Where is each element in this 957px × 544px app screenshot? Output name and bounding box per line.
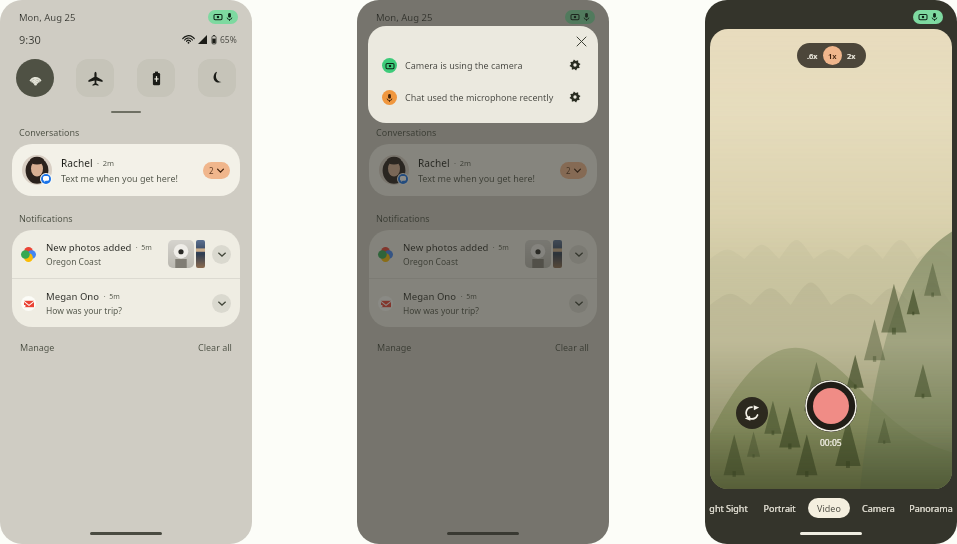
- button[interactable]: ght Sight: [707, 498, 750, 518]
- staticText: Mon, Aug 25: [19, 11, 76, 24]
- staticText: · 2m: [450, 158, 472, 168]
- button[interactable]: .6x: [804, 48, 821, 64]
- staticText: Notifications: [19, 212, 73, 224]
- button[interactable]: 1x: [823, 46, 842, 65]
- button[interactable]: [565, 10, 595, 24]
- staticText: Conversations: [376, 126, 437, 138]
- button[interactable]: Battery saver: [494, 59, 532, 97]
- button[interactable]: Megan Ono: [369, 279, 597, 327]
- staticText: Notifications: [376, 212, 430, 224]
- button[interactable]: Panorama: [907, 498, 955, 518]
- staticText: New photos added: [46, 241, 132, 254]
- button[interactable]: Do not disturb: [555, 59, 593, 97]
- staticText: Text me when you get here!: [61, 172, 178, 184]
- staticText: How was your trip?: [46, 305, 123, 317]
- staticText: Oregon Coast: [46, 256, 102, 268]
- button[interactable]: Rachel: [12, 144, 240, 196]
- button[interactable]: [208, 10, 238, 24]
- button[interactable]: Camera: [860, 498, 897, 518]
- button[interactable]: Manage: [18, 339, 57, 355]
- button[interactable]: Chat used the microphone recently: [368, 83, 598, 111]
- button[interactable]: Portrait: [761, 498, 798, 518]
- button[interactable]: Do not disturb: [198, 59, 236, 97]
- button[interactable]: New photos added: [369, 230, 597, 278]
- button[interactable]: Settings: [564, 54, 586, 76]
- staticText: How was your trip?: [403, 305, 480, 317]
- button[interactable]: Video: [808, 498, 850, 518]
- staticText: Rachel: [61, 156, 93, 170]
- button[interactable]: Expand, 2 messages: [560, 162, 587, 179]
- staticText: Chat used the microphone recently: [405, 91, 564, 103]
- staticText: Rachel: [418, 156, 450, 170]
- button[interactable]: Clear all: [196, 339, 234, 355]
- button[interactable]: Expand: [212, 294, 231, 313]
- button[interactable]: Battery saver: [137, 59, 175, 97]
- button[interactable]: Wi-Fi: [373, 59, 411, 97]
- staticText: ght Sight: [709, 502, 748, 514]
- button[interactable]: Rachel: [369, 144, 597, 196]
- staticText: Manage: [20, 341, 55, 353]
- staticText: Conversations: [19, 126, 80, 138]
- staticText: Clear all: [198, 341, 232, 353]
- staticText: Mon, Aug 25: [376, 11, 433, 24]
- staticText: Oregon Coast: [403, 256, 459, 268]
- staticText: · 5m: [100, 292, 120, 302]
- staticText: Camera: [862, 502, 895, 514]
- staticText: Panorama: [909, 502, 953, 514]
- button[interactable]: Expand: [569, 245, 588, 264]
- button[interactable]: Wi-Fi: [16, 59, 54, 97]
- button[interactable]: New photos added: [12, 230, 240, 278]
- staticText: 1x: [828, 51, 837, 61]
- staticText: · 2m: [93, 158, 115, 168]
- staticText: · 5m: [457, 292, 477, 302]
- staticText: Megan Ono: [403, 290, 457, 303]
- button[interactable]: Expand: [212, 245, 231, 264]
- staticText: Portrait: [763, 502, 796, 514]
- button[interactable]: Switch camera: [736, 397, 768, 429]
- staticText: New photos added: [403, 241, 489, 254]
- staticText: Manage: [377, 341, 412, 353]
- button[interactable]: Camera is using the camera: [368, 51, 598, 79]
- button[interactable]: Airplane mode: [76, 59, 114, 97]
- staticText: 65%: [577, 34, 594, 46]
- staticText: Camera is using the camera: [405, 59, 564, 71]
- button[interactable]: Settings: [564, 86, 586, 108]
- button[interactable]: [913, 10, 943, 24]
- staticText: 00:05: [820, 437, 842, 449]
- button[interactable]: Airplane mode: [433, 59, 471, 97]
- staticText: · 5m: [132, 243, 152, 253]
- staticText: 2: [209, 165, 214, 176]
- button[interactable]: Expand, 2 messages: [203, 162, 230, 179]
- button[interactable]: Expand: [569, 294, 588, 313]
- button[interactable]: 2x: [844, 48, 859, 64]
- staticText: Video: [817, 502, 841, 514]
- staticText: 9:30: [19, 32, 41, 47]
- staticText: Clear all: [555, 341, 589, 353]
- button[interactable]: Manage: [375, 339, 414, 355]
- staticText: 2: [566, 165, 571, 176]
- staticText: Text me when you get here!: [418, 172, 535, 184]
- button[interactable]: Record: [805, 380, 857, 432]
- staticText: · 5m: [489, 243, 509, 253]
- staticText: Megan Ono: [46, 290, 100, 303]
- button[interactable]: Megan Ono: [12, 279, 240, 327]
- button[interactable]: Close: [571, 31, 591, 51]
- staticText: 65%: [220, 34, 237, 46]
- button[interactable]: Clear all: [553, 339, 591, 355]
